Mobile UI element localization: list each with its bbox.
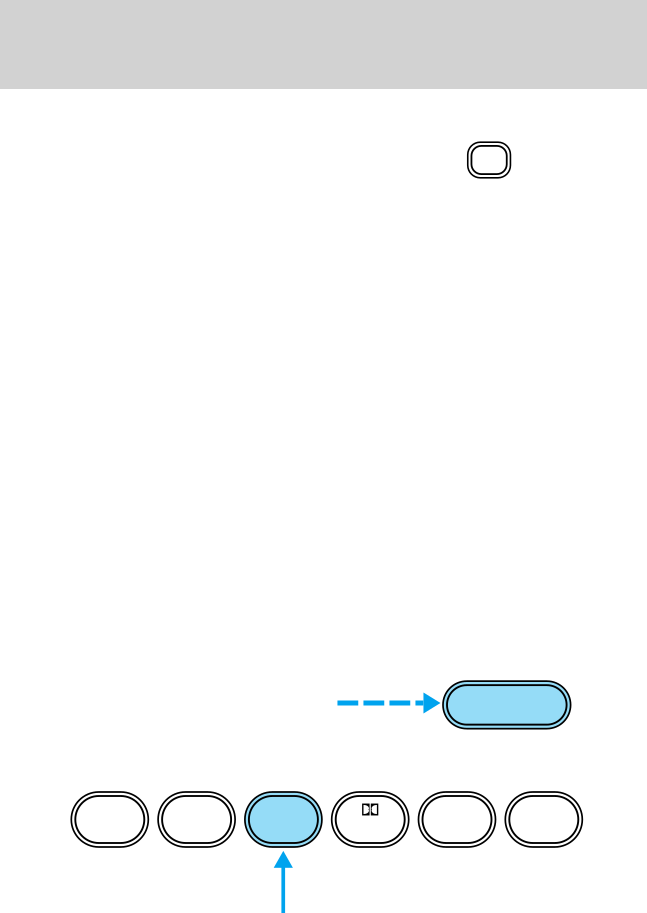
button[interactable]: Tab 3 <box>245 792 322 847</box>
button[interactable]: Tab 5 <box>418 792 495 847</box>
button[interactable]: Tab 1 <box>71 792 148 847</box>
button[interactable]: Tab 6 <box>505 792 582 847</box>
button[interactable]: Navigation bar button <box>468 142 510 178</box>
button[interactable]: Selected control <box>443 681 571 729</box>
button[interactable]: Tab 4 <box>332 792 409 847</box>
button[interactable]: Tab 2 <box>158 792 235 847</box>
